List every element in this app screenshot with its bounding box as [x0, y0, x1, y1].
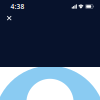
- staticText: 4:38: [10, 2, 24, 11]
- button[interactable]: Close: [3, 12, 16, 25]
